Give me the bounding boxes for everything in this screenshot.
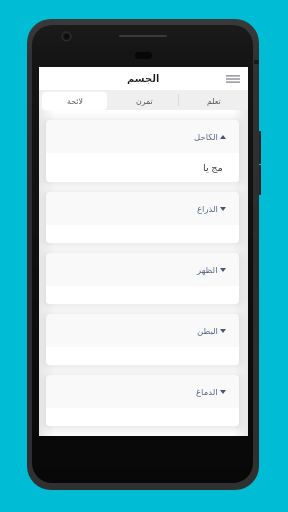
staticText: الذراع: [197, 204, 218, 214]
staticText: لائحة: [67, 97, 83, 106]
staticText: تمرن: [136, 97, 153, 106]
button[interactable]: تمرن: [111, 92, 177, 110]
staticText: البطن: [197, 326, 218, 336]
button[interactable]: الكاحل: [46, 120, 239, 182]
staticText: الظهر: [197, 265, 218, 275]
staticText: تعلم: [207, 97, 221, 106]
button[interactable]: تعلم: [181, 92, 247, 110]
button[interactable]: Menu: [224, 70, 242, 88]
button[interactable]: لائحة: [42, 92, 107, 110]
button[interactable]: الظهر: [46, 253, 239, 304]
staticText: الدماغ: [196, 387, 218, 397]
staticText: مج يا: [203, 161, 223, 174]
button[interactable]: البطن: [46, 314, 239, 365]
staticText: الكاحل: [194, 132, 218, 142]
staticText: الجسم: [127, 73, 160, 85]
button[interactable]: الذراع: [46, 192, 239, 243]
button[interactable]: الدماغ: [46, 375, 239, 426]
